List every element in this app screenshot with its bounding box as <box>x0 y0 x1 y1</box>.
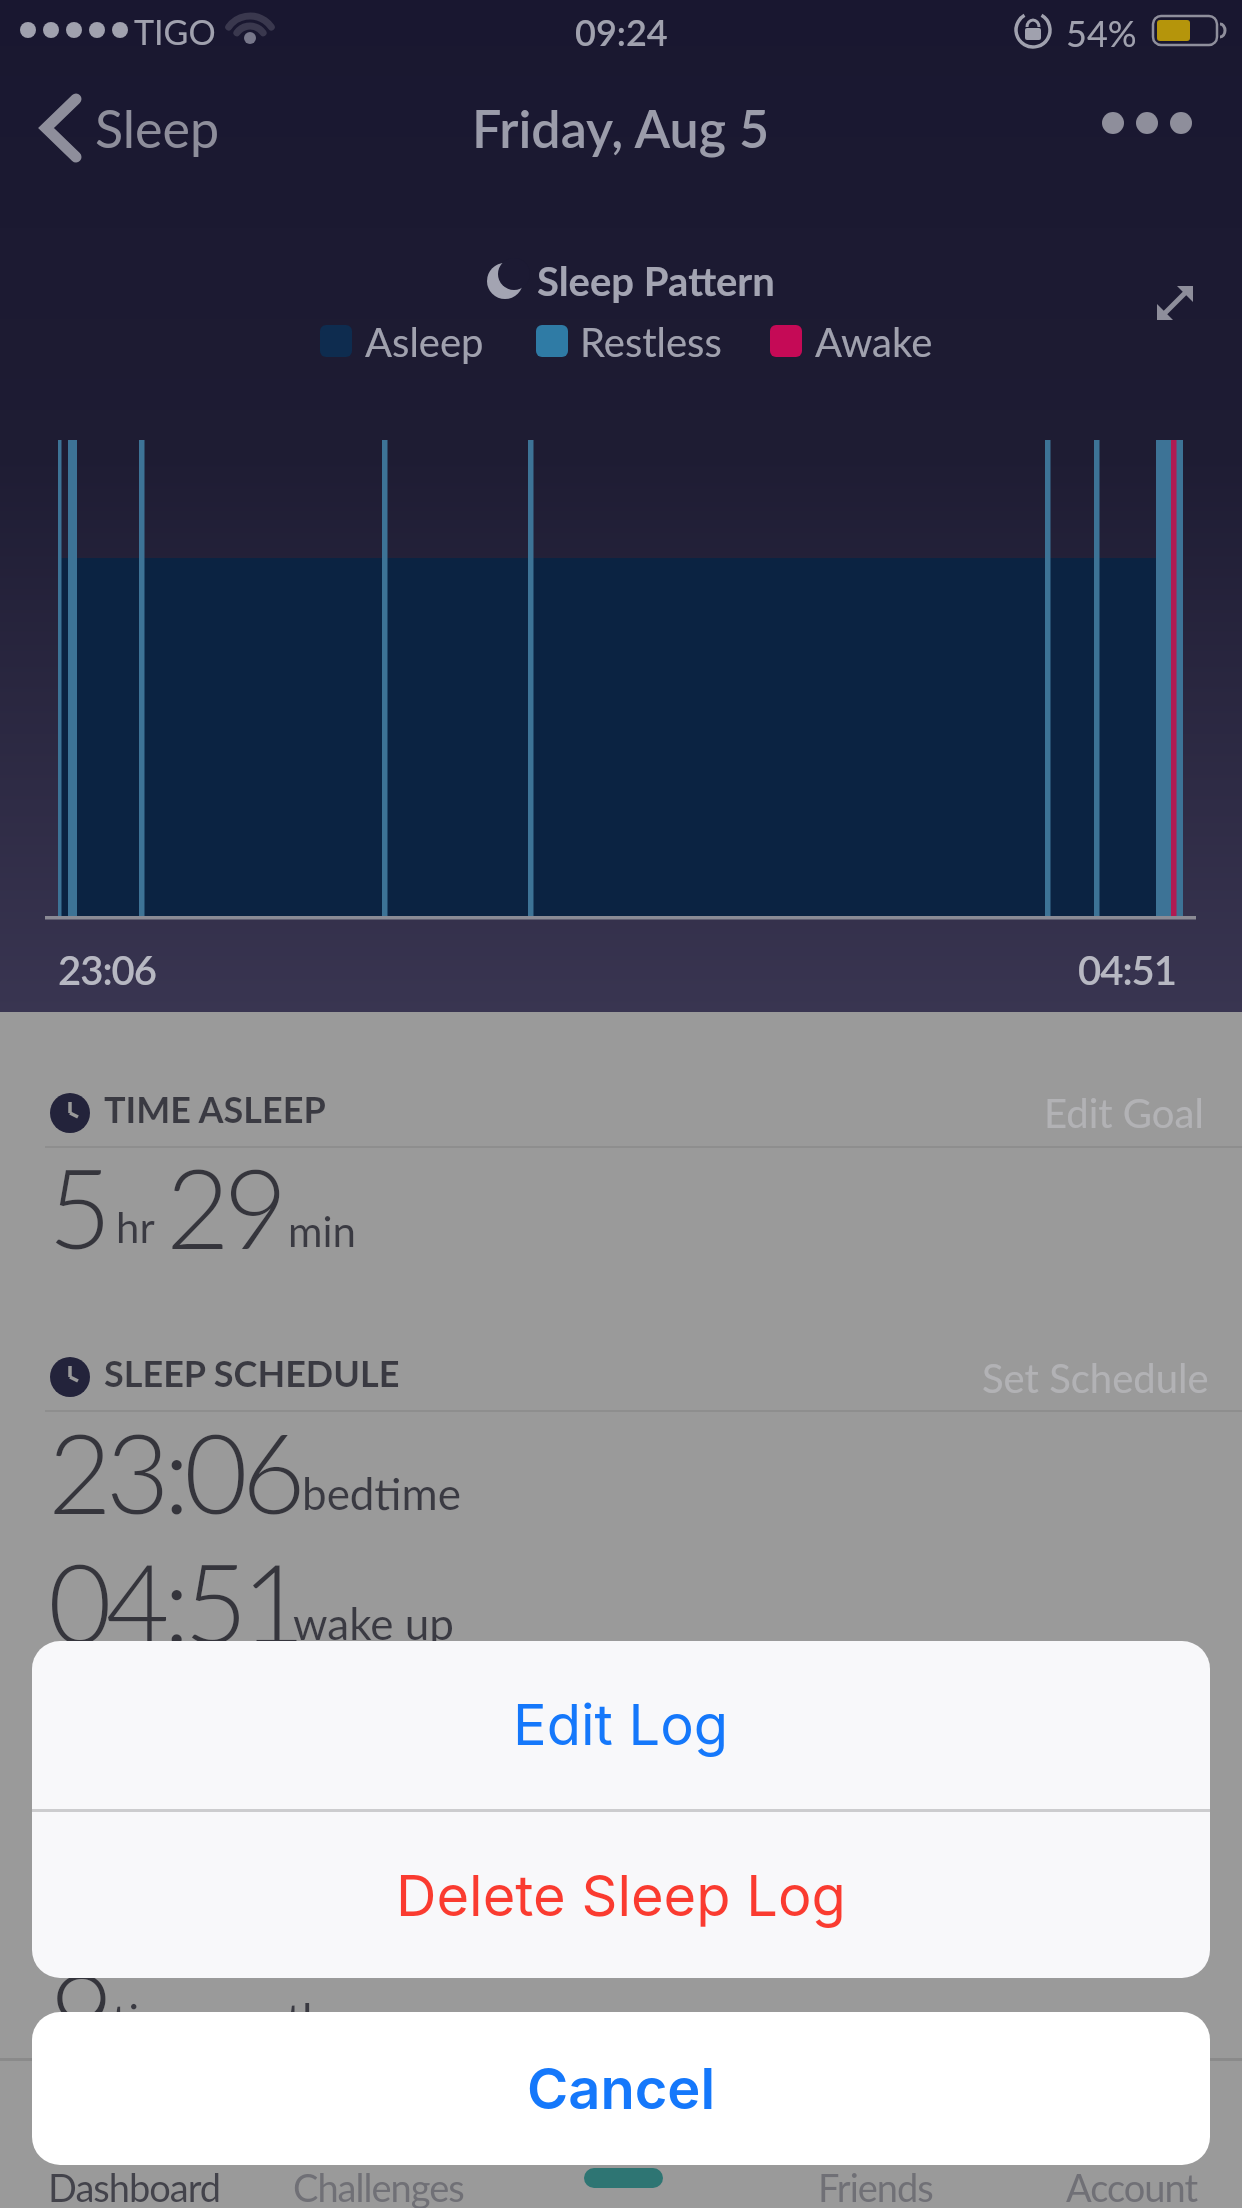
staticText: TIME ASLEEP <box>104 1087 326 1130</box>
staticText: 04:51 <box>1078 946 1176 994</box>
button[interactable] <box>790 2112 970 2208</box>
staticText: times restless <box>112 1993 374 2046</box>
staticText: 23:06 <box>48 1405 300 1537</box>
button[interactable] <box>1090 90 1210 160</box>
button[interactable] <box>1040 2112 1220 2208</box>
staticText: Sleep <box>95 97 220 159</box>
staticText: hr <box>116 1202 155 1252</box>
button[interactable] <box>30 2112 250 2208</box>
button[interactable] <box>1140 275 1210 335</box>
staticText: wake up <box>293 1597 454 1650</box>
staticText: 09:24 <box>575 10 668 53</box>
staticText: Cancel <box>527 2055 716 2123</box>
button[interactable]: Sleep <box>30 90 240 170</box>
staticText: Delete Sleep Log <box>396 1862 846 1930</box>
button[interactable] <box>530 2112 720 2208</box>
staticText: Sleep Pattern <box>537 257 775 305</box>
staticText: Edit Log <box>513 1691 729 1759</box>
staticText: 54% <box>1066 11 1137 54</box>
staticText: Friends <box>818 2164 933 2208</box>
staticText: Account <box>1066 2164 1198 2208</box>
button[interactable]: Delete Sleep Log <box>32 1814 1210 1978</box>
staticText: TIGO <box>134 11 216 52</box>
staticText: Restless <box>580 318 722 366</box>
staticText: min <box>288 1206 357 1256</box>
staticText: Challenges <box>293 2164 464 2208</box>
staticText: Friday, Aug 5 <box>472 97 770 159</box>
staticText: SLEEP SCHEDULE <box>104 1351 400 1394</box>
button[interactable] <box>280 2112 500 2208</box>
staticText: Dashboard <box>48 2164 221 2208</box>
staticText: 23:06 <box>58 946 156 994</box>
button[interactable]: Edit Log <box>32 1641 1210 1809</box>
staticText: Asleep <box>365 318 484 366</box>
button[interactable] <box>960 1338 1210 1400</box>
staticText: 5 <box>48 1140 106 1272</box>
button[interactable] <box>1020 1070 1210 1132</box>
staticText: Set Schedule <box>982 1354 1209 1402</box>
staticText: 29 <box>166 1140 282 1272</box>
staticText: bedtime <box>302 1467 462 1520</box>
staticText: Awake <box>815 318 933 366</box>
button[interactable]: Cancel <box>32 2012 1210 2165</box>
staticText: 9 <box>50 1945 108 2077</box>
staticText: Edit Goal <box>1044 1089 1204 1137</box>
staticText: 04:51 <box>48 1535 300 1667</box>
